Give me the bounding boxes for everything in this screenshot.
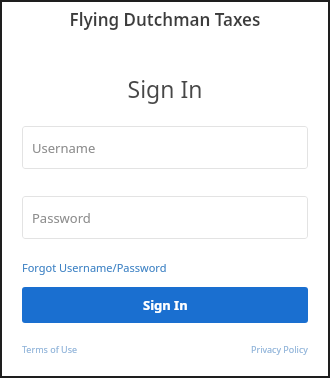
staticText: Privacy Policy	[251, 343, 308, 355]
button[interactable]: Username	[22, 126, 308, 169]
button[interactable]: Sign In	[22, 287, 308, 323]
staticText: Terms of Use	[22, 343, 78, 355]
button[interactable]: Forgot Username/Password	[22, 258, 167, 277]
staticText: Username	[32, 139, 96, 157]
staticText: Flying Dutchman Taxes	[2, 8, 328, 31]
staticText: Sign In	[143, 296, 188, 314]
staticText: Sign In	[2, 73, 328, 104]
staticText: Forgot Username/Password	[22, 260, 167, 275]
button[interactable]: Privacy Policy	[251, 341, 308, 357]
button[interactable]: Password	[22, 196, 308, 239]
button[interactable]: Terms of Use	[22, 341, 78, 357]
staticText: Password	[32, 209, 91, 227]
